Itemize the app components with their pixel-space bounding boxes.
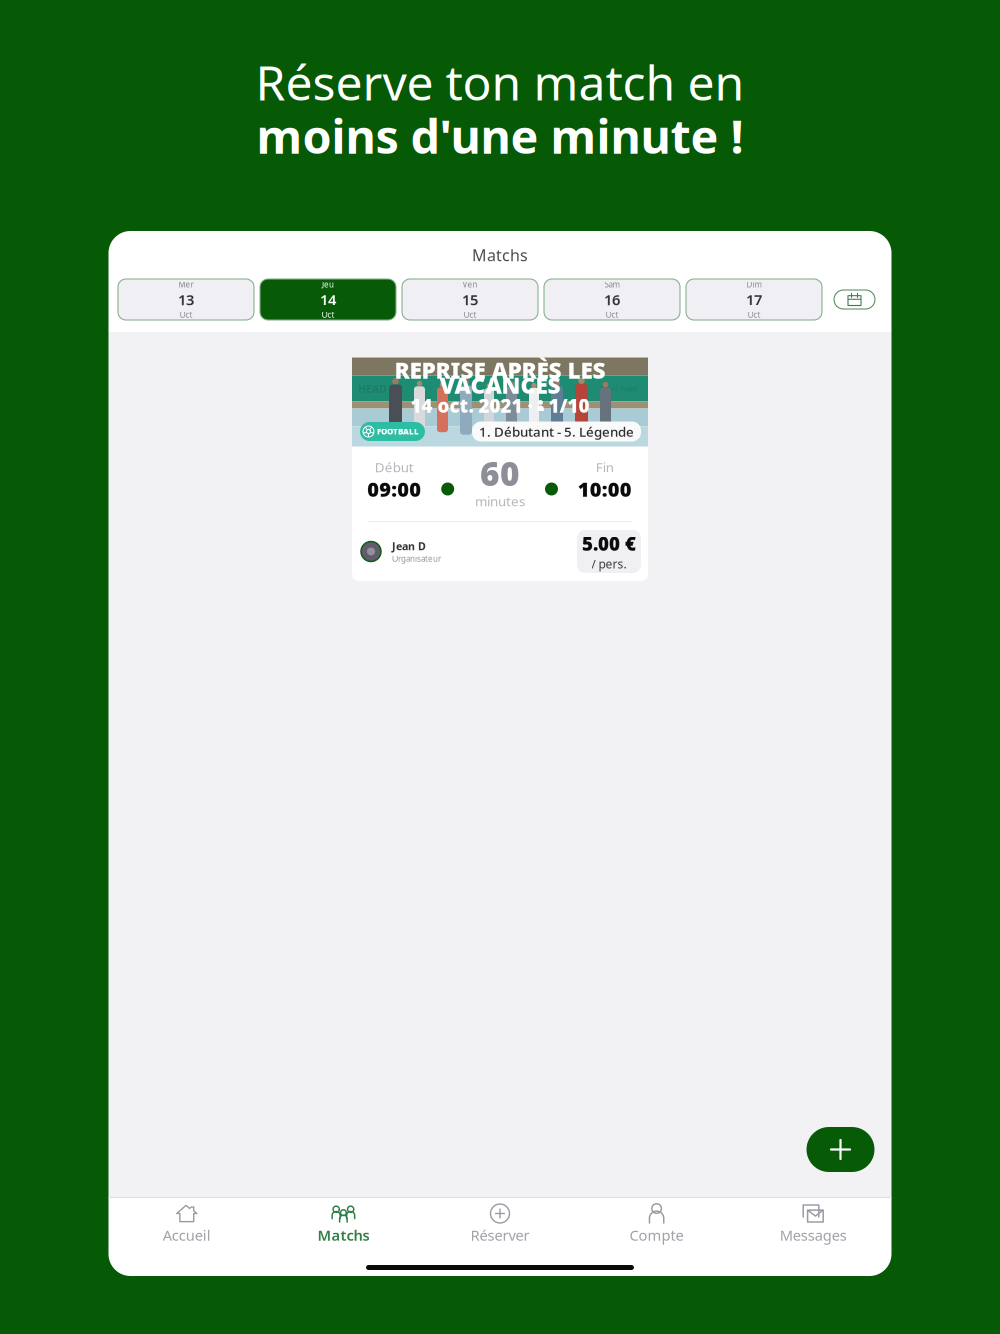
- button[interactable]: Matchs: [265, 1198, 422, 1260]
- button[interactable]: HEAD: [352, 360, 648, 581]
- staticText: Messages: [780, 1225, 847, 1245]
- button[interactable]: Messages: [735, 1198, 891, 1260]
- staticText: 17: [746, 290, 762, 309]
- staticText: 13: [178, 290, 194, 309]
- button[interactable]: Accueil: [108, 1198, 265, 1260]
- staticText: Matchs: [472, 244, 528, 266]
- staticText: 14 oct. 2021 ·: [410, 393, 532, 418]
- staticText: Réserve ton match en: [255, 50, 744, 114]
- staticText: 60: [480, 451, 520, 495]
- staticText: 1/10: [548, 393, 589, 418]
- staticText: REPRISE APRÈS LES: [394, 355, 605, 385]
- button[interactable]: Dim: [686, 279, 822, 320]
- staticText: FOOTBALL: [377, 426, 419, 437]
- staticText: Oct: [463, 309, 476, 320]
- staticText: HEAD: [358, 381, 387, 396]
- staticText: Ven: [462, 279, 477, 290]
- button[interactable]: Create a match: [806, 1127, 874, 1172]
- staticText: Oct: [747, 309, 760, 320]
- staticText: Organisateur: [392, 553, 441, 564]
- staticText: Mer: [178, 279, 193, 290]
- staticText: minutes: [475, 492, 525, 510]
- staticText: Oct: [605, 309, 618, 320]
- staticText: Oct: [179, 309, 192, 320]
- staticText: Compte: [630, 1225, 684, 1245]
- staticText: Matchs: [317, 1225, 369, 1245]
- staticText: moins d'une minute !: [256, 105, 743, 167]
- staticText: 14: [320, 290, 336, 309]
- staticText: 09:00: [367, 476, 421, 502]
- staticText: VACANCES: [439, 370, 560, 400]
- staticText: 15: [462, 290, 478, 309]
- staticText: Réserver: [470, 1225, 529, 1245]
- button[interactable]: Open calendar: [834, 290, 875, 309]
- staticText: Jeu: [322, 279, 334, 290]
- staticText: Fin: [596, 458, 614, 476]
- button[interactable]: Mer: [118, 279, 254, 320]
- staticText: 5.00 €: [582, 531, 636, 556]
- staticText: Oct: [321, 309, 334, 320]
- staticText: 1. Débutant - 5. Légende: [479, 423, 634, 440]
- staticText: Accueil: [163, 1225, 211, 1245]
- button[interactable]: Jeu: [260, 279, 396, 320]
- staticText: Sam: [604, 279, 619, 290]
- staticText: 16: [604, 290, 620, 309]
- staticText: / pers.: [591, 556, 626, 572]
- staticText: Jean D: [392, 539, 426, 553]
- button[interactable]: Réserver: [422, 1198, 578, 1260]
- button[interactable]: Ven: [402, 279, 538, 320]
- button[interactable]: Sam: [544, 279, 680, 320]
- staticText: Début: [375, 458, 414, 476]
- staticText: 10:00: [578, 476, 632, 502]
- staticText: Dim: [746, 279, 761, 290]
- button[interactable]: Compte: [578, 1198, 735, 1260]
- staticText: Sport Padel: [600, 384, 638, 393]
